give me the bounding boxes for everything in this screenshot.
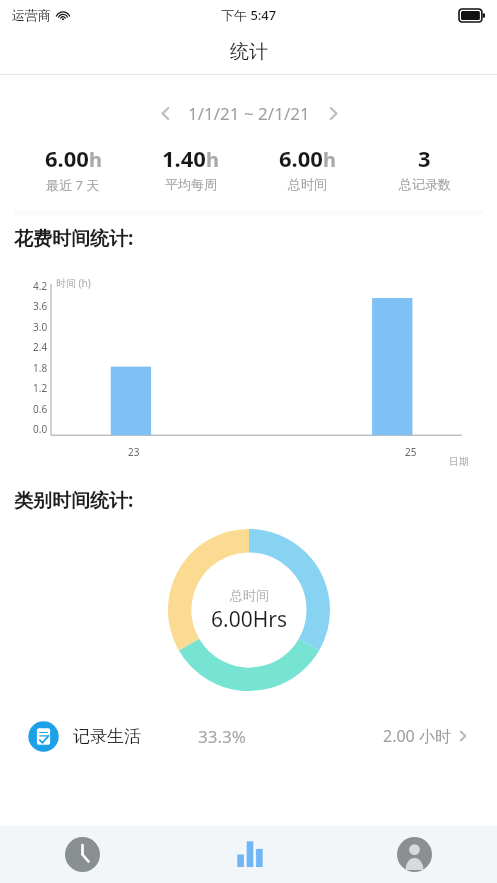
staticText: 时间 (h) (56, 276, 91, 290)
staticText: 2.00 小时 (383, 725, 451, 747)
staticText: 总时间 (288, 176, 327, 192)
staticText: 总记录数 (399, 176, 451, 192)
staticText: 花费时间统计: (14, 225, 134, 251)
staticText: 0.6 (33, 402, 48, 416)
staticText: 3.0 (33, 320, 48, 334)
staticText: 33.3% (198, 725, 246, 748)
staticText: 运营商 (12, 7, 51, 23)
staticText: h (323, 146, 336, 173)
staticText: 1.8 (33, 361, 48, 375)
staticText: 23 (128, 445, 140, 459)
staticText: 3.6 (33, 299, 48, 313)
button[interactable]: Profile (331, 826, 497, 883)
staticText: 类别时间统计: (14, 487, 134, 513)
staticText: 6.00 (279, 143, 323, 173)
staticText: 1.2 (33, 381, 48, 395)
button[interactable]: Statistics (165, 826, 331, 883)
staticText: 最近 7 天 (46, 176, 100, 194)
staticText: 4.2 (33, 279, 48, 293)
staticText: 下午 5:47 (221, 6, 277, 24)
staticText: 统计 (230, 40, 268, 64)
button[interactable]: 记录生活 (13, 707, 484, 765)
staticText: 日期 (449, 455, 469, 468)
button[interactable]: Records (0, 826, 165, 883)
staticText: 1.40 (162, 143, 206, 173)
staticText: h (89, 146, 102, 173)
staticText: 6.00 (45, 143, 89, 173)
button[interactable]: Previous period (148, 96, 182, 130)
staticText: 25 (405, 445, 417, 459)
staticText: 1/1/21 ~ 2/1/21 (188, 102, 310, 125)
staticText: 0.0 (33, 422, 48, 436)
staticText: 3 (418, 143, 431, 173)
staticText: 总时间 (230, 587, 269, 603)
button[interactable]: Next period (316, 96, 350, 130)
staticText: 6.00Hrs (211, 605, 287, 634)
staticText: 2.4 (33, 340, 48, 354)
staticText: h (206, 146, 219, 173)
staticText: 平均每周 (165, 176, 217, 192)
staticText: 记录生活 (73, 726, 141, 747)
